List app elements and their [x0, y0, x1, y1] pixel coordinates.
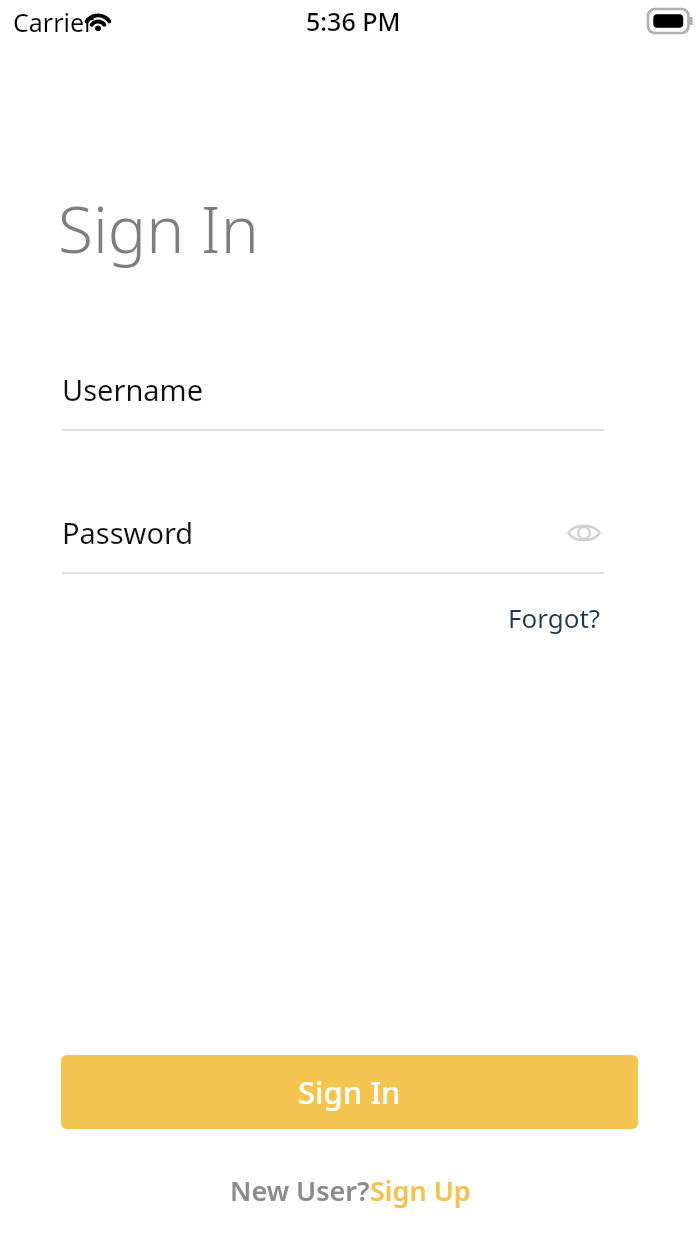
- button[interactable]: Password: [62, 513, 604, 574]
- button[interactable]: Sign In: [61, 1055, 638, 1129]
- button[interactable]: Forgot?: [508, 600, 601, 635]
- staticText: Username: [62, 370, 204, 409]
- button[interactable]: Show password: [560, 515, 608, 551]
- staticText: New User?: [230, 1172, 370, 1209]
- staticText: Sign In: [58, 185, 259, 272]
- staticText: 5:36 PM: [306, 4, 401, 38]
- staticText: Sign Up: [370, 1172, 471, 1209]
- staticText: Sign In: [298, 1071, 401, 1113]
- button[interactable]: Username: [62, 370, 604, 431]
- staticText: Carrier: [13, 5, 95, 39]
- button[interactable]: Sign Up: [370, 1172, 471, 1209]
- staticText: Password: [62, 513, 194, 552]
- staticText: Forgot?: [508, 600, 601, 635]
